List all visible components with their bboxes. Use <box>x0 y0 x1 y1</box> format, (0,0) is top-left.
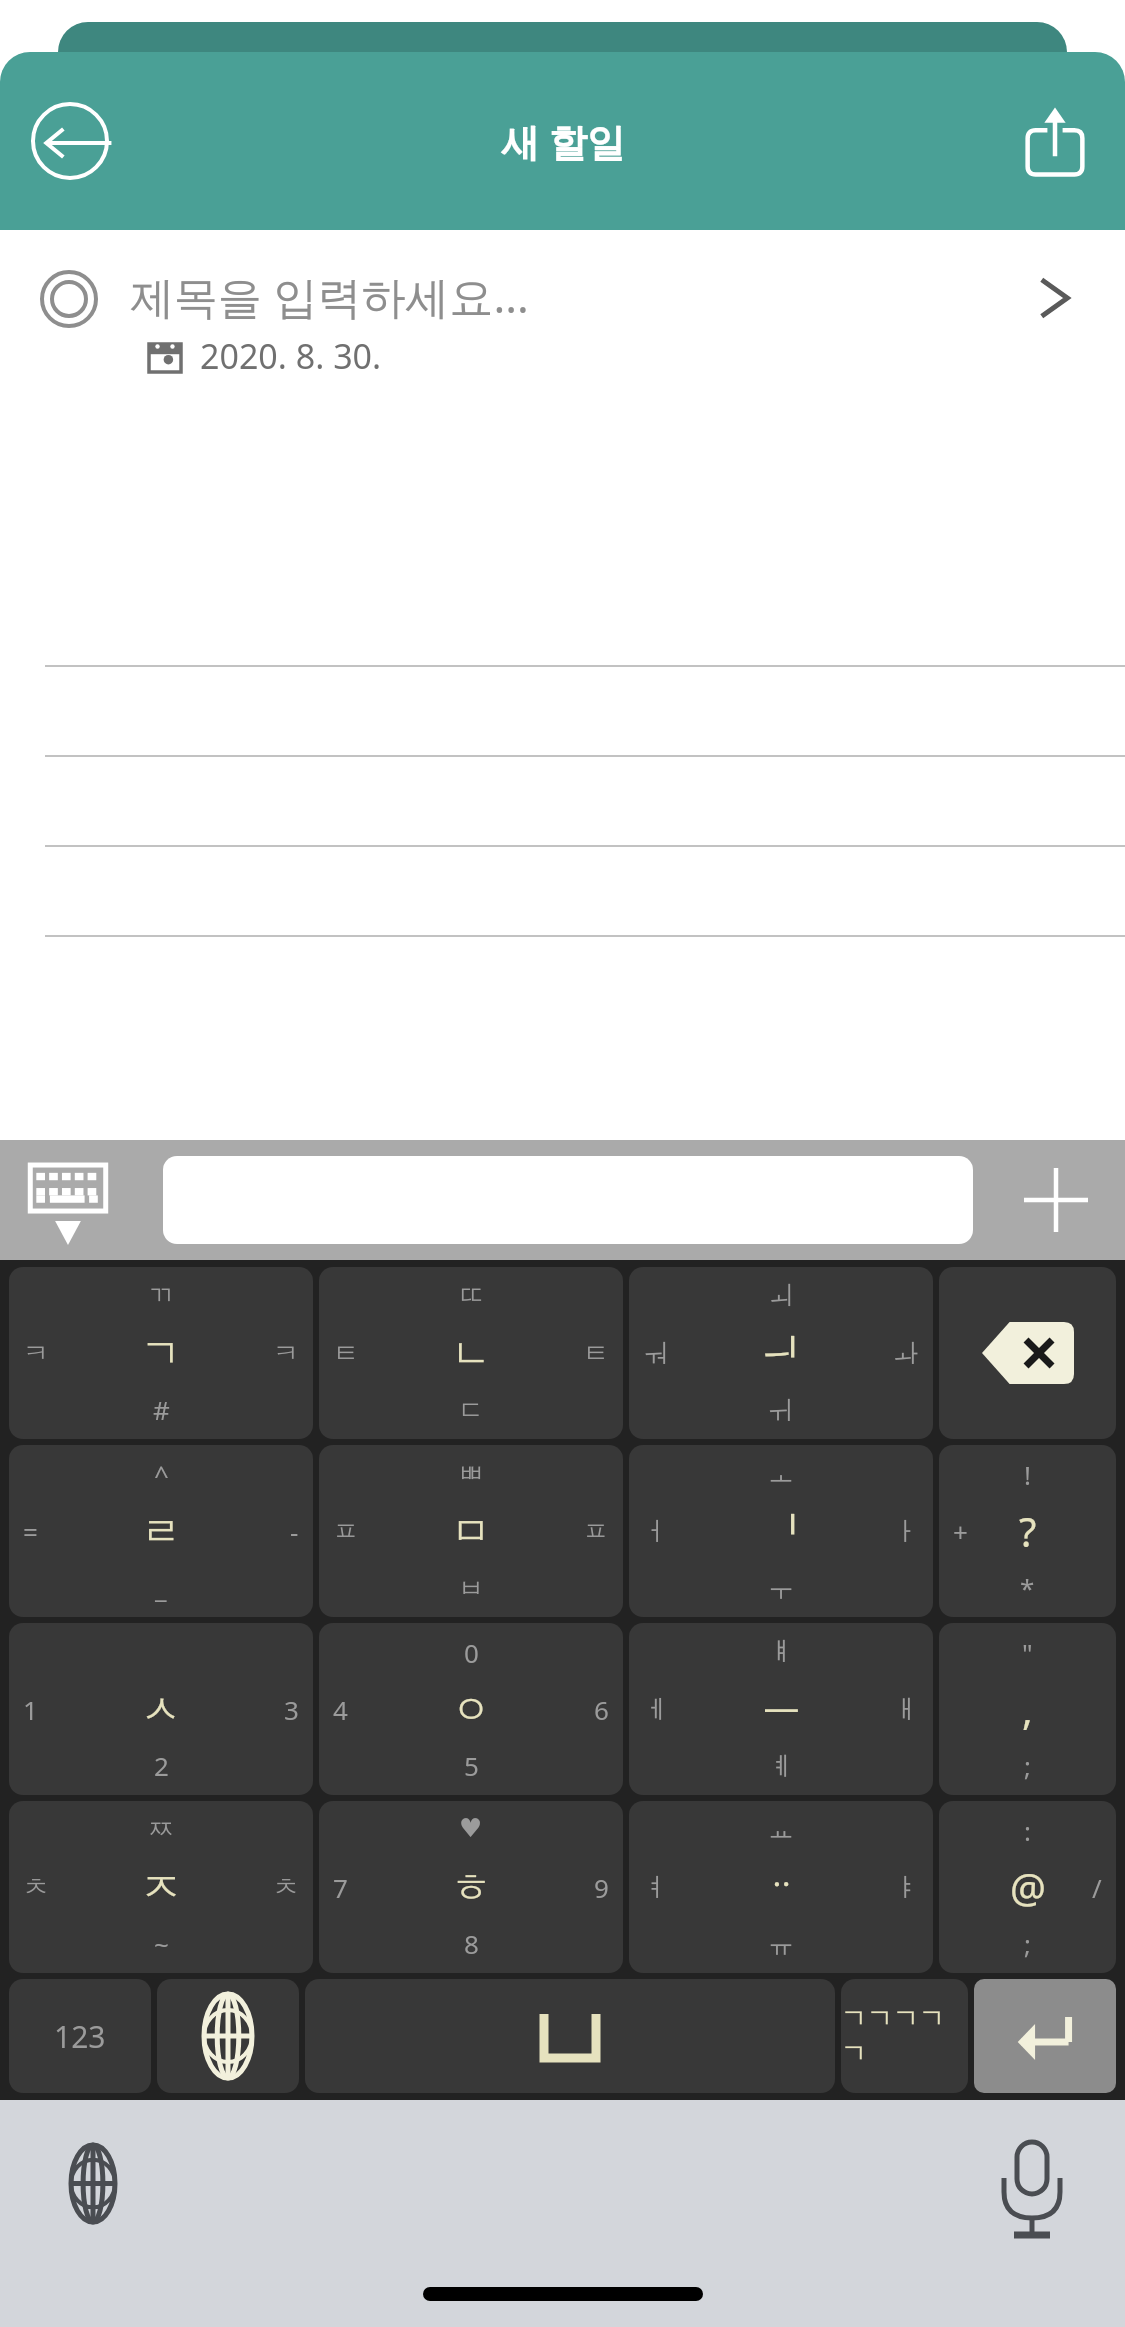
staticText: ㅔ <box>643 1693 669 1726</box>
staticText: ㅃ <box>458 1457 484 1490</box>
button[interactable]: 123 <box>9 1979 151 2093</box>
staticText: 3 <box>284 1692 299 1727</box>
staticText: ㄷ <box>458 1394 484 1427</box>
button[interactable]: 제목을 입력하세요... <box>0 248 1125 398</box>
staticText: ᆢ <box>761 1862 801 1912</box>
staticText: ; <box>1024 1748 1031 1783</box>
staticText: - <box>290 1514 299 1549</box>
staticText: ᅴ <box>763 1330 800 1377</box>
staticText: ㅈ <box>141 1862 181 1912</box>
staticText: ㅓ <box>643 1515 669 1548</box>
button[interactable]: ^ <box>9 1445 313 1617</box>
staticText: = <box>23 1514 38 1549</box>
staticText: ㄲ <box>148 1279 174 1312</box>
button[interactable]: 2 <box>9 1623 313 1795</box>
button[interactable]: ㅉ <box>9 1801 313 1973</box>
staticText: 123 <box>54 2016 106 2057</box>
button[interactable]: ㅛ <box>629 1801 933 1973</box>
button[interactable]: ㅃ <box>319 1445 623 1617</box>
button[interactable]: ! <box>939 1445 1116 1617</box>
button[interactable]: Change language <box>157 1979 299 2093</box>
staticText: ㅖ <box>768 1750 794 1783</box>
staticText: ㅑ <box>893 1871 919 1904</box>
staticText: ㅝ <box>643 1337 669 1370</box>
button[interactable]: ㄱㄱㄱㄱㄱ <box>841 1979 968 2093</box>
button[interactable]: : <box>939 1801 1116 1973</box>
staticText: 0 <box>464 1635 479 1670</box>
staticText: * <box>1020 1570 1035 1605</box>
staticText: 7 <box>333 1870 348 1905</box>
staticText: _ <box>155 1570 167 1605</box>
staticText: 4 <box>333 1692 348 1727</box>
other: Open detail <box>1027 270 1083 326</box>
staticText: ㅅ <box>141 1684 181 1734</box>
staticText: ㅍ <box>333 1515 359 1548</box>
staticText: # <box>153 1392 170 1427</box>
staticText: ♥ <box>459 1813 483 1843</box>
staticText: ㅋ <box>273 1337 299 1370</box>
button[interactable]: Share <box>1017 103 1093 179</box>
staticText: ㅁ <box>451 1506 491 1556</box>
staticText: + <box>953 1514 968 1549</box>
button[interactable]: Change keyboard <box>50 2140 136 2226</box>
staticText: ㄸ <box>458 1279 484 1312</box>
staticText: ㅊ <box>23 1871 49 1904</box>
button[interactable]: ㄸ <box>319 1267 623 1439</box>
staticText: 새 할일 <box>501 115 625 167</box>
staticText: ㅘ <box>893 1337 919 1370</box>
staticText: ㅎ <box>451 1862 491 1912</box>
staticText: ~ <box>154 1926 169 1961</box>
staticText: ㅊ <box>273 1871 299 1904</box>
staticText: 2 <box>154 1748 169 1783</box>
staticText: / <box>1092 1870 1102 1905</box>
staticText: ㅕ <box>643 1871 669 1904</box>
button[interactable]: " <box>939 1623 1116 1795</box>
button[interactable]: Return <box>974 1979 1116 2093</box>
staticText: ᅳ <box>763 1686 800 1733</box>
staticText: ㅉ <box>148 1813 174 1846</box>
staticText: ㄱ <box>141 1328 181 1378</box>
staticText: ㄱㄱㄱㄱㄱ <box>841 2002 968 2070</box>
staticText: 제목을 입력하세요... <box>130 266 529 326</box>
staticText: ㅗ <box>768 1457 794 1490</box>
staticText: ㅍ <box>583 1515 609 1548</box>
button[interactable] <box>939 1267 1116 1439</box>
button[interactable]: ㅚ <box>629 1267 933 1439</box>
staticText: 5 <box>464 1748 479 1783</box>
staticText: ㅚ <box>768 1279 794 1312</box>
button[interactable]: ㄲ <box>9 1267 313 1439</box>
staticText: , <box>1022 1682 1033 1736</box>
button[interactable]: 0 <box>319 1623 623 1795</box>
staticText: ㅌ <box>333 1337 359 1370</box>
staticText: 2020. 8. 30. <box>200 333 382 379</box>
staticText: ; <box>1024 1926 1031 1961</box>
button[interactable]: ♥ <box>319 1801 623 1973</box>
button[interactable]: Hide keyboard <box>22 1154 114 1246</box>
button[interactable] <box>163 1156 973 1244</box>
button[interactable]: Back <box>30 101 110 181</box>
staticText: : <box>1024 1813 1031 1848</box>
button[interactable]: ㅗ <box>629 1445 933 1617</box>
staticText: ㅐ <box>893 1693 919 1726</box>
staticText: ㅂ <box>458 1572 484 1605</box>
staticText: ! <box>1024 1457 1031 1492</box>
staticText: ㅌ <box>583 1337 609 1370</box>
staticText: ㅋ <box>23 1337 49 1370</box>
button[interactable]: Space <box>305 1979 835 2093</box>
button[interactable]: Add <box>1021 1165 1091 1235</box>
staticText: 8 <box>464 1926 479 1961</box>
staticText: ㅟ <box>768 1394 794 1427</box>
staticText: 1 <box>23 1692 38 1727</box>
staticText: ㅒ <box>768 1635 794 1668</box>
staticText: ㄹ <box>141 1506 181 1556</box>
staticText: ㅜ <box>768 1572 794 1605</box>
staticText: 9 <box>594 1870 609 1905</box>
staticText: ? <box>1019 1504 1037 1558</box>
staticText: ᅵ <box>763 1508 800 1555</box>
button[interactable]: ㅒ <box>629 1623 933 1795</box>
button[interactable]: Voice input <box>989 2140 1075 2226</box>
staticText: ㅠ <box>768 1928 794 1961</box>
staticText: " <box>1022 1635 1033 1670</box>
staticText: @ <box>1010 1860 1046 1914</box>
staticText: ㅇ <box>451 1684 491 1734</box>
